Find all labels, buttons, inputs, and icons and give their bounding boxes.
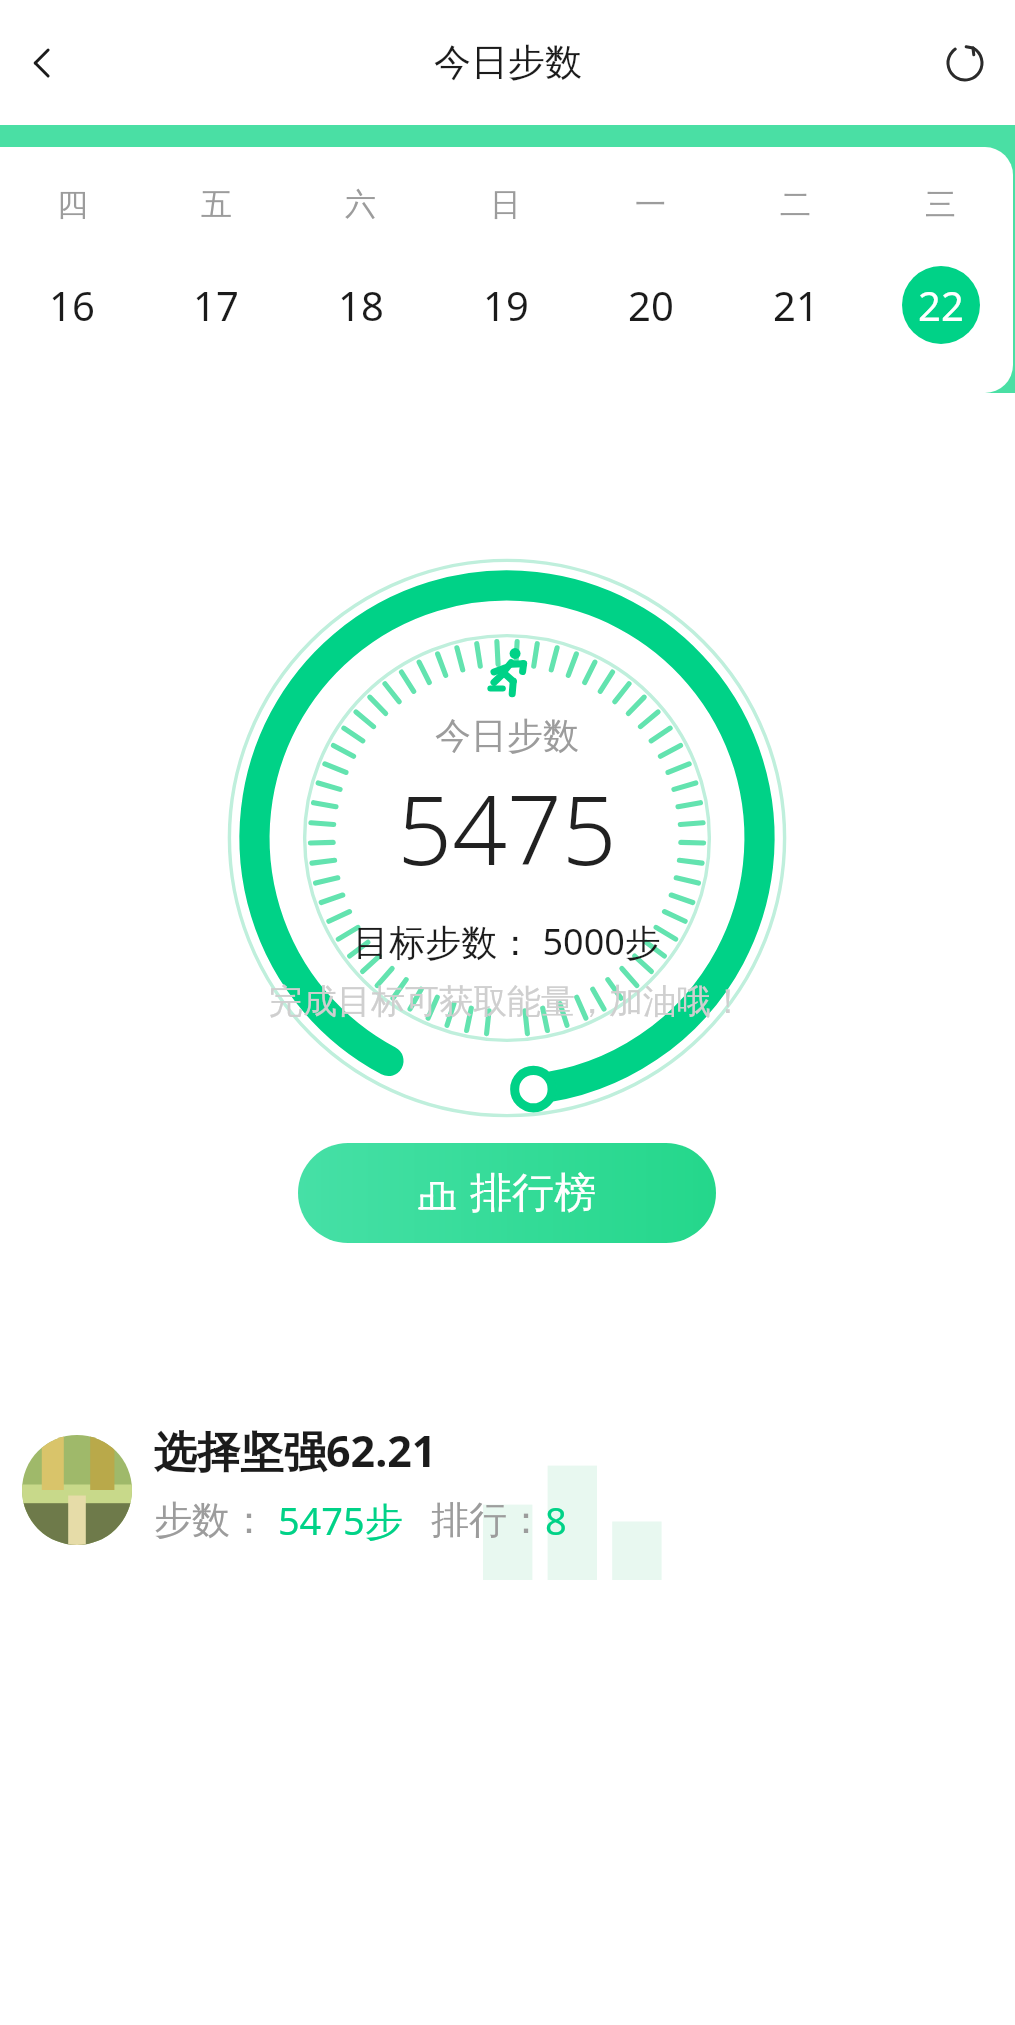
staticText: 20 xyxy=(628,278,674,332)
button[interactable]: 20 xyxy=(578,266,723,344)
button[interactable]: Refresh xyxy=(929,27,1001,99)
button[interactable]: 17 xyxy=(144,266,288,344)
staticText: 19 xyxy=(483,278,529,332)
staticText: 完成目标可获取能量，加油哦！ xyxy=(269,980,745,1023)
staticText: 排行榜 xyxy=(470,1167,596,1220)
staticText: 选择坚强62.21 xyxy=(154,1421,437,1480)
button[interactable]: 选择坚强62.21 xyxy=(0,1395,1013,1595)
staticText: 今日步数 xyxy=(435,713,579,758)
staticText: 18 xyxy=(338,278,384,332)
staticText: 5475步 xyxy=(268,1494,403,1546)
button[interactable]: 排行榜 xyxy=(298,1143,716,1243)
button[interactable]: 19 xyxy=(433,266,578,344)
staticText: 22 xyxy=(918,278,964,332)
staticText: 一 xyxy=(635,185,666,224)
staticText: 六 xyxy=(345,185,376,224)
staticText: 日 xyxy=(490,185,521,224)
staticText: 今日步数 xyxy=(434,39,582,86)
staticText: 21 xyxy=(773,278,819,332)
staticText: 步数： xyxy=(154,1496,268,1544)
button[interactable]: 22 xyxy=(868,266,1013,344)
staticText: 目标步数： 5000步 xyxy=(353,917,661,966)
staticText: 三 xyxy=(925,185,956,224)
staticText: 16 xyxy=(49,278,95,332)
staticText: 8 xyxy=(545,1494,567,1546)
button[interactable]: 18 xyxy=(288,266,433,344)
staticText: 二 xyxy=(780,185,811,224)
staticText: 四 xyxy=(57,185,88,224)
staticText: 排行： xyxy=(431,1496,545,1544)
button[interactable]: 16 xyxy=(0,266,144,344)
button[interactable]: Back xyxy=(6,27,78,99)
staticText: 五 xyxy=(201,185,232,224)
staticText: 17 xyxy=(193,278,239,332)
button[interactable]: 21 xyxy=(723,266,868,344)
staticText: 5475 xyxy=(397,762,617,893)
